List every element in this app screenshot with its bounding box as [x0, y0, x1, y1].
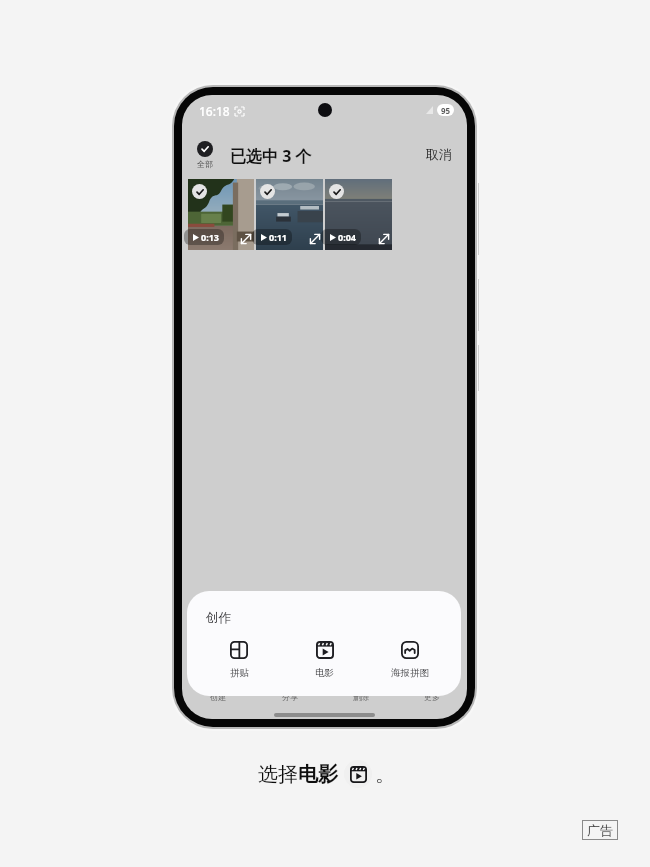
button[interactable]: 电影 [282, 639, 367, 681]
button[interactable]: 已选择 [329, 184, 344, 199]
staticText: 电影 [315, 667, 334, 679]
staticText: 16:18 [199, 103, 230, 119]
staticText: 拼贴 [230, 667, 249, 679]
button[interactable]: 已选择 [325, 179, 392, 250]
staticText: 选择 [258, 762, 298, 787]
staticText: 0:04 [338, 231, 356, 243]
staticText: 创建 [210, 692, 226, 702]
staticText: 更多 [424, 692, 440, 702]
staticText: 95 [441, 105, 451, 116]
button[interactable]: 已选择 [260, 184, 275, 199]
button[interactable]: 分享 [254, 690, 325, 704]
staticText: 0:11 [269, 231, 287, 243]
button[interactable]: 已选择 [192, 184, 207, 199]
staticText: 创作 [206, 610, 231, 626]
button[interactable]: 更多 [396, 690, 467, 704]
staticText: 海报拼图 [391, 667, 429, 679]
staticText: 删除 [353, 692, 369, 702]
button[interactable]: 取消 [426, 146, 452, 162]
staticText: 已选中 3 个 [230, 145, 312, 167]
staticText: 分享 [282, 692, 298, 702]
button[interactable]: 已选择 [188, 179, 254, 250]
other: 展开 [241, 234, 251, 244]
staticText: 广告 [587, 822, 613, 838]
button[interactable]: 全部 [197, 141, 213, 169]
staticText: 0:13 [201, 231, 219, 243]
button[interactable]: 已选择 [256, 179, 323, 250]
other: 展开 [379, 234, 389, 244]
staticText: 全部 [197, 159, 213, 169]
button[interactable]: 删除 [325, 690, 396, 704]
staticText: 。 [375, 762, 395, 787]
button[interactable]: 广告 [582, 820, 618, 840]
button[interactable]: 海报拼图 [367, 639, 452, 681]
button[interactable]: 创建 [182, 690, 254, 704]
button[interactable]: 拼贴 [196, 639, 282, 681]
other: 展开 [310, 234, 320, 244]
staticText: 电影 [298, 762, 338, 787]
